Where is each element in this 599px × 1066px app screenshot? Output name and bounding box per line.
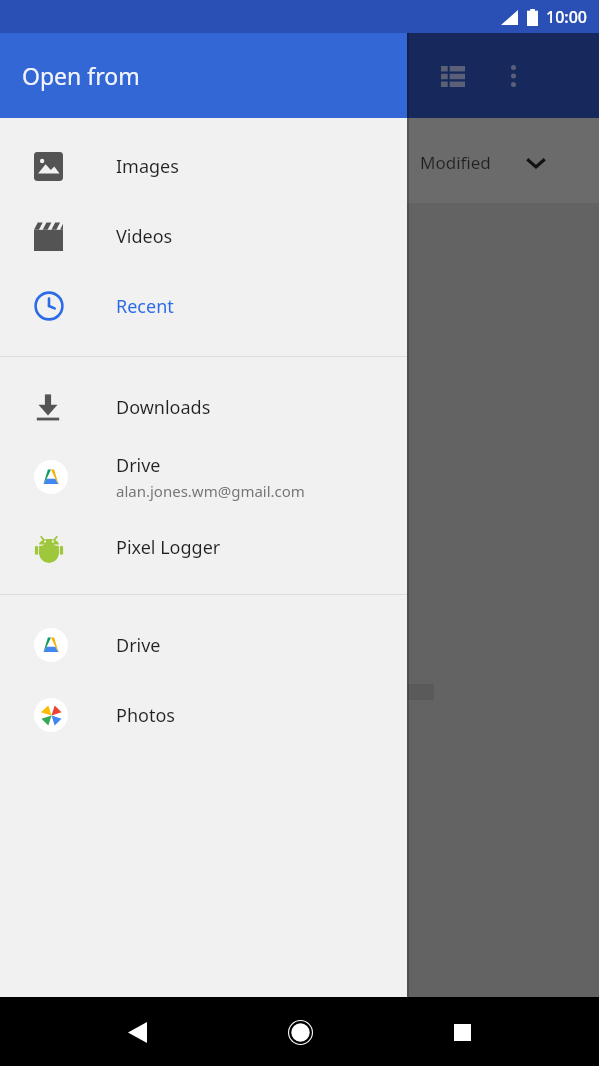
staticText: 10:00	[546, 6, 587, 28]
button[interactable]: Photos	[0, 680, 407, 750]
staticText: Open from	[22, 60, 140, 91]
button[interactable]: Home	[273, 1005, 327, 1059]
button[interactable]: Recent	[0, 271, 407, 341]
staticText: Videos	[116, 224, 173, 249]
staticText: Drive	[116, 453, 161, 478]
button[interactable]: Videos	[0, 201, 407, 271]
button[interactable]: Recent apps	[435, 1005, 489, 1059]
button[interactable]: Pixel Logger	[0, 512, 407, 582]
staticText: Images	[116, 154, 179, 179]
button[interactable]: Drive	[0, 610, 407, 680]
button[interactable]: Drive	[0, 442, 407, 512]
staticText: Recent	[116, 294, 174, 319]
staticText: alan.jones.wm@gmail.com	[116, 481, 305, 501]
button[interactable]: List view	[429, 52, 477, 100]
staticText: Pixel Logger	[116, 535, 221, 560]
button[interactable]: Downloads	[0, 372, 407, 442]
button[interactable]: Back	[110, 1005, 164, 1059]
staticText: Drive	[116, 633, 161, 658]
button[interactable]: Modified	[420, 140, 585, 185]
button[interactable]: Images	[0, 131, 407, 201]
staticText: Photos	[116, 703, 175, 728]
button[interactable]: More options	[489, 52, 537, 100]
staticText: Modified	[420, 151, 491, 174]
staticText: Downloads	[116, 395, 211, 420]
